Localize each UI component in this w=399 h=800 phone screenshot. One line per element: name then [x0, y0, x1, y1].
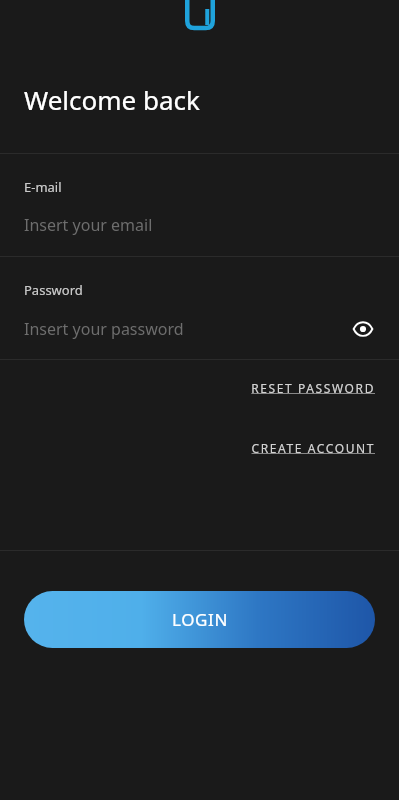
button[interactable]: E-mail [0, 154, 399, 256]
staticText: Insert your password [24, 318, 351, 340]
staticText: CREATE ACCOUNT [251, 440, 375, 456]
staticText: LOGIN [172, 608, 228, 631]
staticText: Password [24, 281, 83, 299]
staticText: Welcome back [24, 82, 200, 117]
button[interactable]: Show password [351, 317, 375, 341]
staticText: E-mail [24, 178, 62, 196]
button[interactable]: RESET PASSWORD [251, 380, 375, 396]
button[interactable]: Password [0, 257, 399, 359]
staticText: Insert your email [24, 214, 375, 236]
staticText: RESET PASSWORD [251, 380, 375, 396]
button[interactable]: CREATE ACCOUNT [251, 440, 375, 456]
button[interactable]: LOGIN [24, 591, 375, 648]
